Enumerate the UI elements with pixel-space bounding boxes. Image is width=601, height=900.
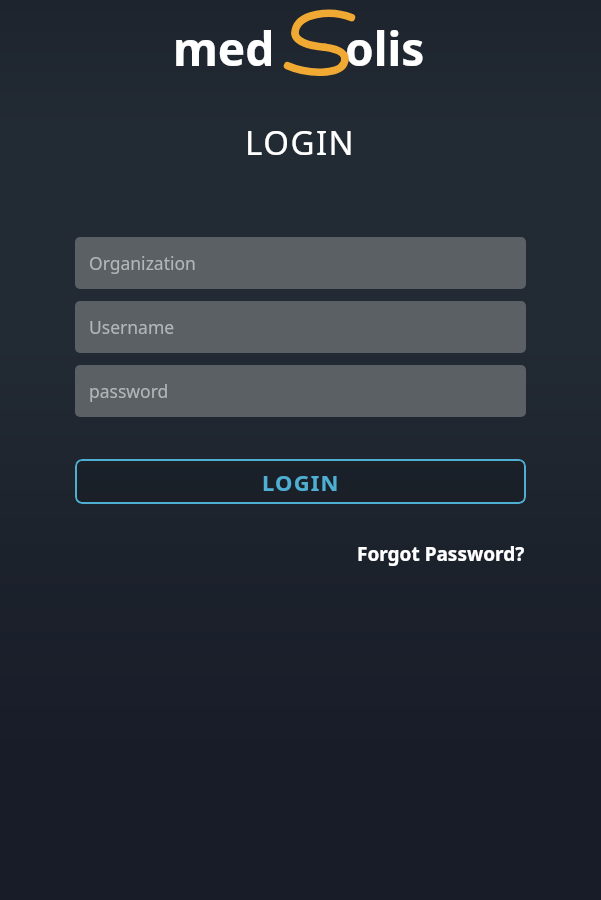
staticText: Forgot Password? (357, 541, 525, 567)
staticText: password (89, 379, 169, 403)
staticText: LOGIN (245, 120, 356, 165)
staticText: olis (345, 17, 425, 80)
button[interactable]: Organization (75, 237, 526, 289)
button[interactable]: password (75, 365, 526, 417)
staticText: Organization (89, 251, 196, 275)
button[interactable]: LOGIN (75, 459, 526, 504)
button[interactable]: Username (75, 301, 526, 353)
button[interactable]: Forgot Password? (353, 537, 529, 571)
staticText: med (173, 17, 275, 80)
staticText: Username (89, 315, 175, 339)
staticText: LOGIN (262, 467, 340, 497)
